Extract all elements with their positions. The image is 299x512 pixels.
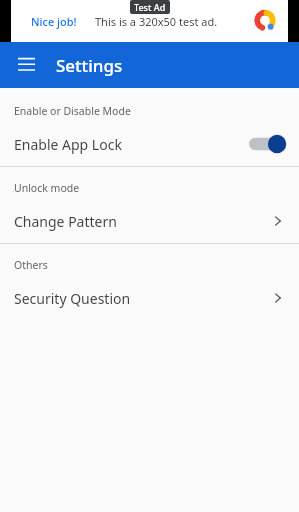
staticText: Enable App Lock <box>14 135 122 154</box>
staticText: Change Pattern <box>14 212 117 231</box>
staticText: Test Ad <box>134 1 166 13</box>
button[interactable]: Open navigation drawer <box>8 47 44 83</box>
staticText: This is a 320x50 test ad. <box>95 14 218 29</box>
staticText: Settings <box>56 54 123 77</box>
staticText: Others <box>14 258 48 272</box>
button[interactable]: Change Pattern <box>0 199 299 243</box>
staticText: Nice job! <box>31 14 77 29</box>
button[interactable]: Security Question <box>0 276 299 320</box>
button[interactable]: Enable App Lock <box>0 122 299 166</box>
staticText: Unlock mode <box>14 181 80 195</box>
staticText: Security Question <box>14 289 131 308</box>
staticText: Enable or Disable Mode <box>14 104 131 118</box>
button[interactable]: Nice job! <box>11 0 288 42</box>
